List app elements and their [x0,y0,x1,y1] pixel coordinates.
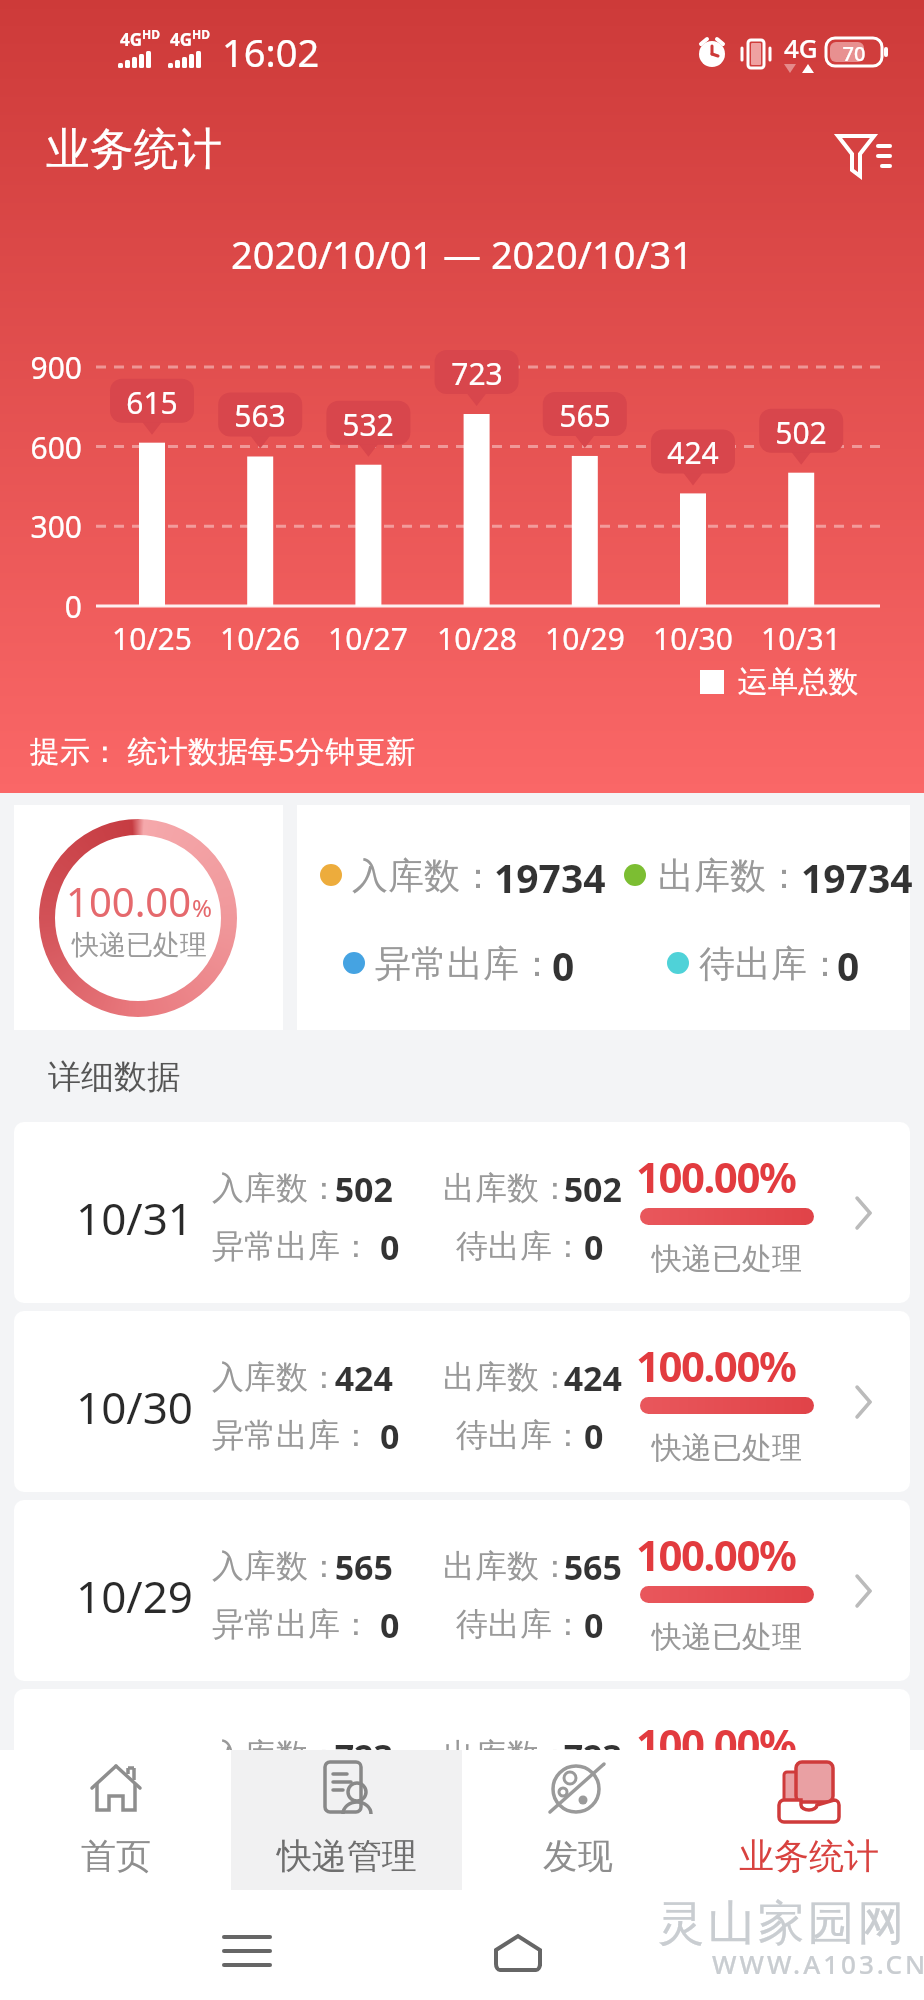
staticText: 502 [544,1166,622,1212]
button[interactable]: 快递管理 [231,1750,462,1890]
staticText: 10/25 [102,618,202,659]
staticText: 详细数据 [48,1056,180,1098]
staticText: 提示： 统计数据每5分钟更新 [30,730,415,771]
staticText: 0 [380,1602,400,1648]
staticText: 入库数： [212,1357,340,1397]
staticText: 0 [552,939,575,992]
staticText: 10/31 [751,618,851,659]
staticText: 快递已处理 [640,1618,814,1656]
staticText: 723 [544,1733,622,1779]
button[interactable] [224,1935,274,1971]
staticText: 532 [326,404,410,445]
staticText: 19734 [801,851,913,904]
staticText: 异常出库： [212,1226,372,1266]
staticText: HD [192,26,210,42]
staticText: 0 [584,1224,604,1270]
staticText: 19734 [494,851,606,904]
button[interactable]: 10/29 [14,1500,910,1681]
staticText: 10/26 [210,618,310,659]
button[interactable] [492,1932,548,1976]
staticText: 0 [837,939,860,992]
staticText: 入库数： [212,1546,340,1586]
staticText: 100.00% [636,1148,796,1205]
button[interactable]: 入库数： [297,805,910,1030]
staticText: 565 [543,395,627,436]
staticText: % [192,891,212,924]
staticText: 100.00% [636,1337,796,1394]
staticText: 723 [435,353,519,394]
staticText: 100.00 [66,874,192,928]
staticText: 565 [315,1544,393,1590]
staticText: 待出库： [699,941,843,986]
button[interactable]: 10/28 [14,1689,910,1870]
staticText: 出库数： [443,1735,571,1775]
staticText: 0 [584,1602,604,1648]
staticText: 出库数： [443,1168,571,1208]
staticText: 快递已处理 [640,1429,814,1467]
staticText: 发现 [543,1834,613,1878]
staticText: HD [142,26,160,42]
staticText: 424 [544,1355,622,1401]
staticText: 10/28 [427,618,527,659]
staticText: 0 [380,1224,400,1270]
staticText: 565 [544,1544,622,1590]
staticText: 运单总数 [738,663,858,701]
staticText: 待出库： [456,1226,584,1266]
staticText: 快递管理 [277,1834,417,1878]
button[interactable] [836,132,892,184]
staticText: 业务统计 [46,122,222,177]
button[interactable]: 首页 [0,1750,231,1890]
button[interactable]: 10/30 [14,1311,910,1492]
staticText: 0 [584,1791,604,1837]
staticText: 10/27 [318,618,418,659]
button[interactable]: 发现 [462,1750,693,1890]
staticText: 100.00% [636,1526,796,1583]
staticText: 70 [826,40,882,67]
staticText: 900 [0,347,82,388]
button[interactable]: 业务统计 [693,1750,924,1890]
staticText: 快递已处理 [640,1240,814,1278]
staticText: 异常出库： [212,1415,372,1455]
staticText: 入库数： [212,1735,340,1775]
staticText: WWW.A103.CN [712,1946,924,1981]
staticText: 4G [784,30,818,65]
button[interactable]: 100.00 [14,805,283,1030]
staticText: 快递已处理 [72,928,207,962]
staticText: 入库数： [352,853,496,898]
staticText: 待出库： [456,1793,584,1833]
staticText: 入库数： [212,1168,340,1208]
staticText: 615 [110,382,194,423]
staticText: 灵山家园网 [656,1894,906,1953]
staticText: 0 [584,1413,604,1459]
staticText: 16:02 [222,26,320,78]
staticText: 10/30 [643,618,743,659]
staticText: 快递已处理 [640,1807,814,1845]
staticText: 10/28 [76,1755,194,1815]
staticText: 0 [380,1413,400,1459]
staticText: 10/29 [535,618,635,659]
staticText: 424 [315,1355,393,1401]
staticText: 待出库： [456,1604,584,1644]
staticText: 502 [315,1166,393,1212]
staticText: 10/30 [76,1377,194,1437]
button[interactable]: 10/31 [14,1122,910,1303]
staticText: 600 [0,427,82,468]
staticText: 待出库： [456,1415,584,1455]
staticText: 4G [170,28,193,51]
staticText: 异常出库： [212,1604,372,1644]
staticText: 4G [120,28,143,51]
staticText: 300 [0,506,82,547]
staticText: 出库数： [443,1357,571,1397]
staticText: 10/29 [76,1566,194,1626]
staticText: 723 [315,1733,393,1779]
staticText: 10/31 [76,1188,194,1248]
staticText: 0 [0,586,82,627]
staticText: 出库数： [658,853,802,898]
staticText: 424 [651,432,735,473]
staticText: 502 [759,412,843,453]
staticText: 异常出库： [212,1793,372,1833]
staticText: 首页 [81,1834,151,1878]
staticText: 563 [218,395,302,436]
button[interactable]: 2020/10/01 — 2020/10/31 [0,228,924,280]
